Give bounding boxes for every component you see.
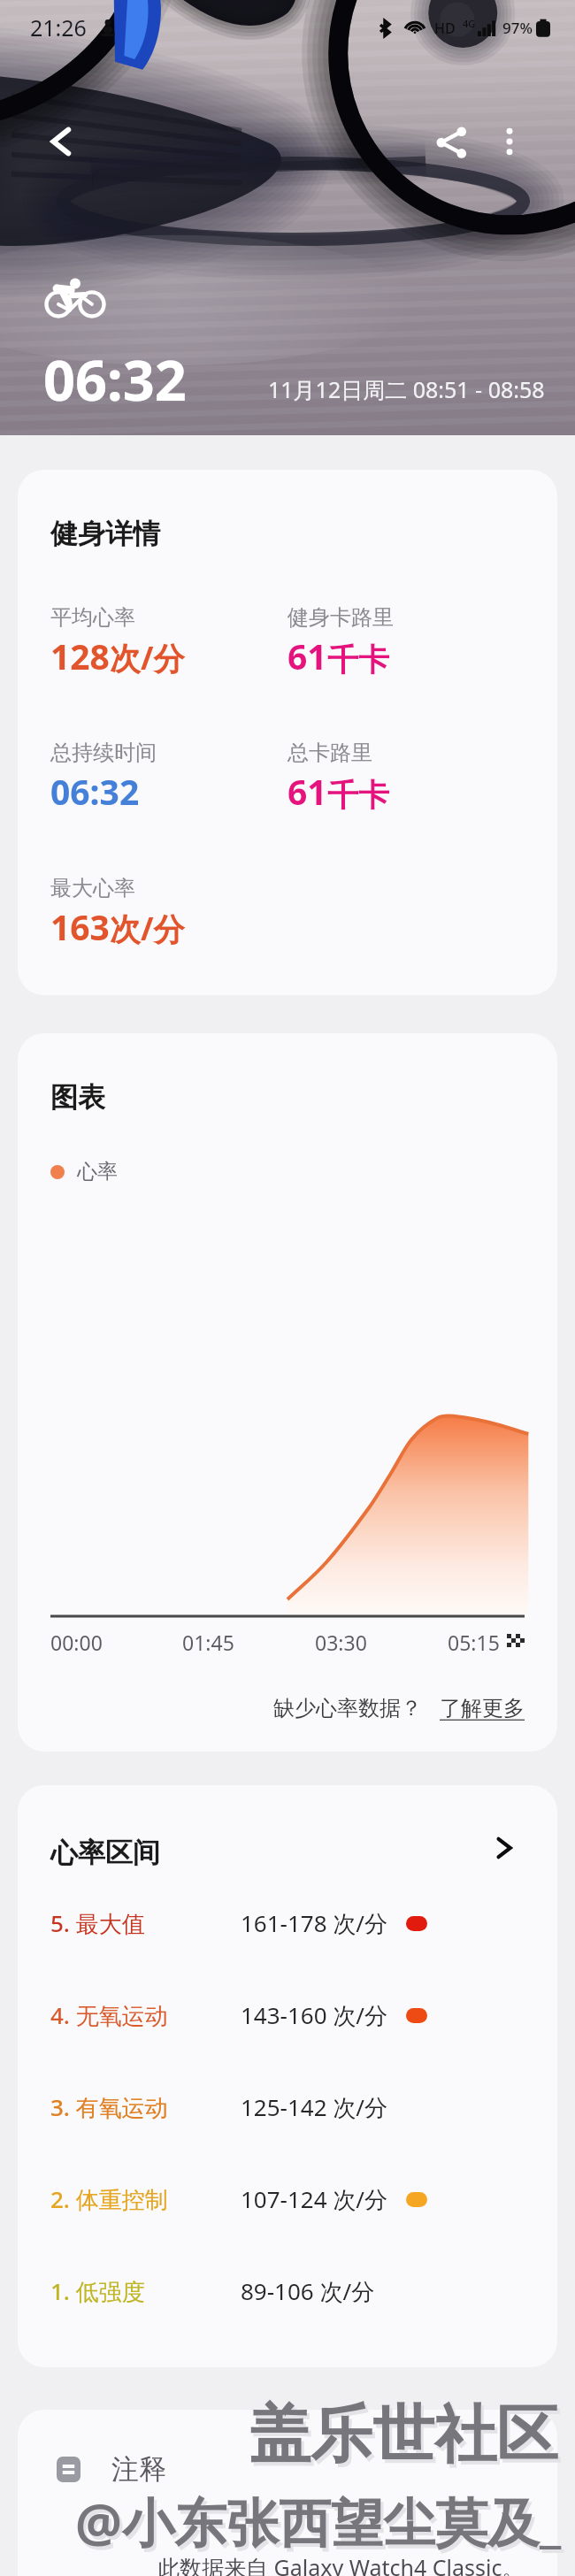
staticText: 千卡 [327, 776, 389, 815]
staticText: 143-160 次/分 [241, 1999, 388, 2031]
staticText: 05:15 [448, 1629, 500, 1656]
button[interactable]: 1. 低强度 [50, 2245, 525, 2337]
staticText: 最大心率 [50, 875, 135, 901]
staticText: 161-178 次/分 [241, 1907, 388, 1939]
staticText: 盖乐世社区 [249, 2396, 558, 2474]
staticText: 平均心率 [50, 604, 135, 631]
staticText: 心率 [77, 1159, 118, 1184]
staticText: 89-106 次/分 [241, 2275, 375, 2307]
staticText: 千卡 [327, 640, 389, 679]
staticText: 06:32 [50, 768, 140, 815]
staticText: 97% [502, 18, 533, 38]
staticText: 4. 无氧运动 [50, 1999, 168, 2031]
staticText: 01:45 [182, 1629, 234, 1656]
staticText: 1. 低强度 [50, 2275, 145, 2307]
staticText: 了解更多 [440, 1695, 525, 1721]
button[interactable]: Share [426, 117, 476, 166]
staticText: 61 [287, 768, 327, 815]
staticText: HD [434, 19, 456, 38]
staticText: 图表 [50, 1080, 105, 1115]
button[interactable]: Back [37, 117, 87, 166]
staticText: 163 [50, 903, 110, 950]
staticText: 125-142 次/分 [241, 2091, 388, 2123]
button[interactable]: 5. 最大值 [50, 1877, 525, 1969]
staticText: @小东张西望尘莫及_ [78, 2489, 564, 2561]
staticText: 107-124 次/分 [241, 2183, 388, 2215]
staticText: 5. 最大值 [50, 1907, 145, 1939]
staticText: 00:00 [50, 1629, 103, 1656]
staticText: 128 [50, 632, 110, 679]
staticText: 03:30 [315, 1629, 367, 1656]
button[interactable]: More options [485, 117, 534, 166]
staticText: 2. 体重控制 [50, 2183, 168, 2215]
staticText: 健身卡路里 [287, 604, 394, 631]
button[interactable]: 了解更多 [440, 1695, 525, 1721]
button[interactable]: 4. 无氧运动 [50, 1969, 525, 2061]
staticText: 缺少心率数据？ [273, 1695, 422, 1721]
staticText: 健身详情 [50, 517, 160, 551]
staticText: @小东张西望尘莫及_ [75, 2486, 562, 2557]
button[interactable]: 2. 体重控制 [50, 2153, 525, 2245]
staticText: 次/分 [110, 908, 185, 950]
staticText: 次/分 [110, 637, 185, 679]
staticText: 此数据来自 Galaxy Watch4 Classic。 [157, 2552, 525, 2576]
staticText: 11月12日周二 08:51 - 08:58 [268, 374, 545, 404]
staticText: 总卡路里 [287, 740, 372, 766]
staticText: 21:26 [30, 12, 87, 42]
staticText: 3. 有氧运动 [50, 2091, 168, 2123]
staticText: 06:32 [43, 341, 187, 418]
staticText: 总持续时间 [50, 740, 157, 766]
button[interactable]: 心率区间 [50, 1836, 525, 1870]
staticText: 注释 [111, 2452, 166, 2487]
staticText: 4G [463, 17, 476, 30]
staticText: 心率区间 [50, 1836, 160, 1870]
staticText: 61 [287, 632, 327, 679]
button[interactable]: 3. 有氧运动 [50, 2061, 525, 2153]
staticText: 盖乐世社区 [251, 2400, 561, 2478]
